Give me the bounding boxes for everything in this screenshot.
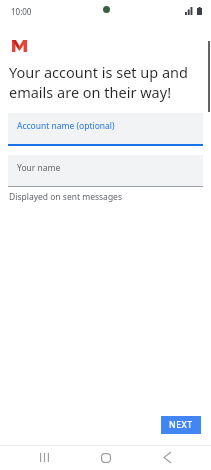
staticText: Your name: [17, 162, 61, 174]
button[interactable]: Home: [88, 445, 124, 470]
button[interactable]: Account name (optional): [8, 113, 203, 146]
staticText: Account name (optional): [17, 120, 115, 132]
button[interactable]: Recent apps: [26, 445, 62, 470]
staticText: NEXT: [169, 419, 193, 431]
staticText: Your account is set up and emails are on…: [9, 62, 188, 102]
button[interactable]: Back: [149, 445, 185, 470]
staticText: Displayed on sent messages: [9, 191, 122, 203]
staticText: 10:00: [11, 6, 32, 17]
button[interactable]: NEXT: [161, 416, 201, 434]
button[interactable]: Your name: [8, 155, 203, 187]
